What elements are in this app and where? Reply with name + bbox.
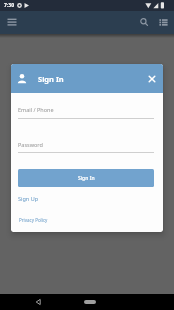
staticText: Email / Phone — [18, 106, 54, 113]
button[interactable] — [30, 294, 46, 310]
button[interactable] — [84, 300, 96, 304]
staticText: Sign Up — [18, 195, 39, 202]
staticText: Password — [18, 141, 43, 148]
button[interactable] — [4, 14, 20, 30]
staticText: 7:30 — [4, 2, 14, 9]
button[interactable]: Email / Phone — [18, 106, 154, 119]
button[interactable]: Sign In — [18, 169, 154, 187]
button[interactable] — [141, 68, 163, 90]
button[interactable]: Sign Up — [18, 195, 39, 202]
button[interactable]: Password — [18, 141, 154, 153]
button[interactable]: Privacy Policy — [19, 217, 48, 223]
staticText: Privacy Policy — [19, 217, 48, 223]
staticText: Sign In — [38, 74, 64, 84]
button[interactable] — [136, 14, 153, 31]
staticText: Sign In — [78, 175, 95, 182]
button[interactable] — [155, 14, 172, 31]
button[interactable] — [11, 68, 33, 90]
